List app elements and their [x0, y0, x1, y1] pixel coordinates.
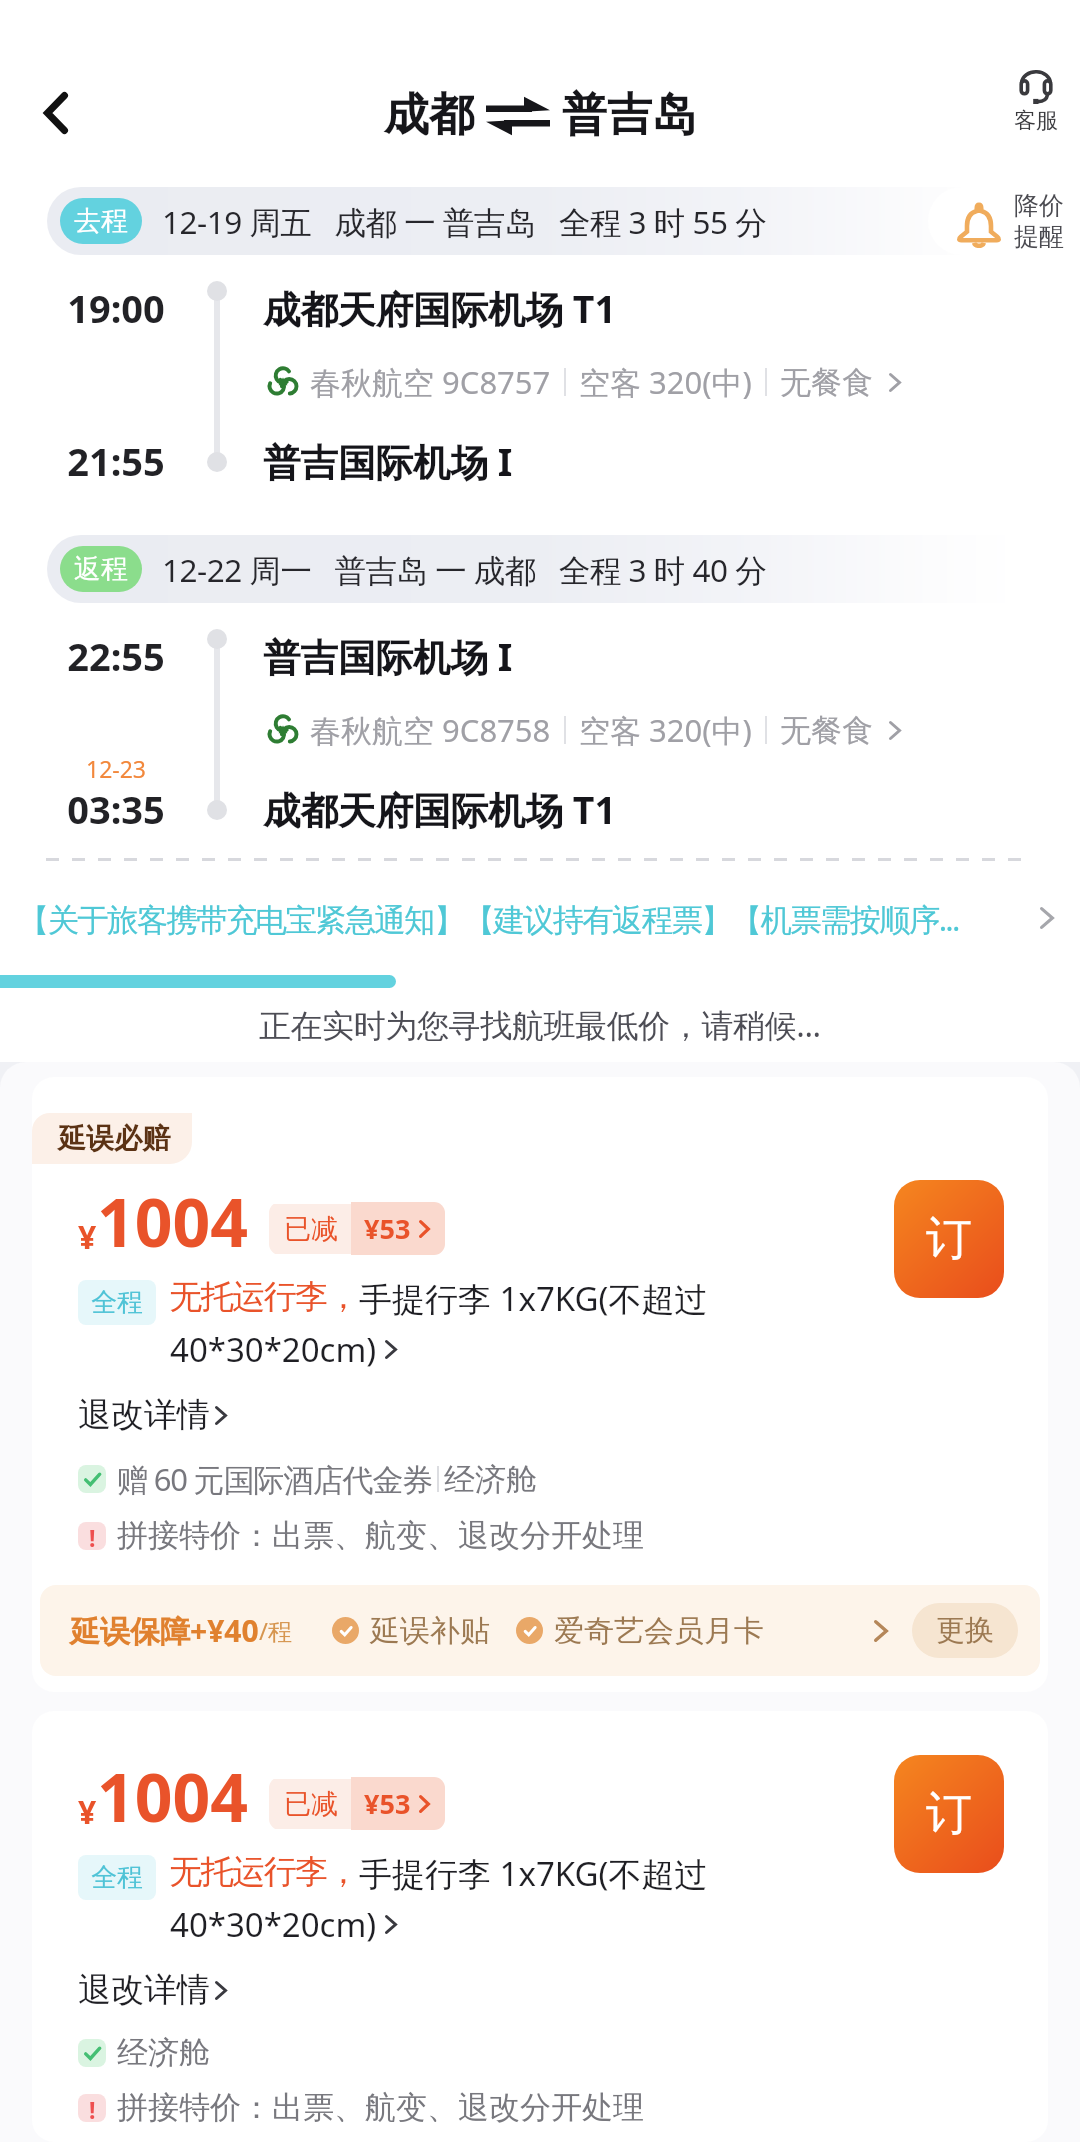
staticText: 普吉国际机场 I: [263, 436, 513, 487]
staticText: 空客 320(中): [579, 361, 752, 403]
staticText: 无餐食: [780, 711, 873, 750]
staticText: 经济舱: [444, 1460, 537, 1499]
staticText: 普吉岛: [562, 87, 697, 144]
staticText: 返程: [74, 552, 128, 586]
staticText: 1004: [97, 1176, 249, 1266]
button[interactable]: 退改详情: [78, 1969, 227, 2011]
button[interactable]: 已减: [269, 1777, 445, 1830]
staticText: 爱奇艺会员月卡: [554, 1612, 764, 1650]
button[interactable]: 客服 Customer service: [998, 64, 1074, 141]
button[interactable]: 延误必赔: [32, 1077, 1048, 1692]
staticText: 订: [926, 1785, 972, 1843]
staticText: 无餐食: [780, 363, 873, 402]
staticText: 全程: [91, 1286, 143, 1319]
staticText: 1004: [97, 1751, 249, 1841]
button[interactable]: 春秋航空 9C8758: [266, 709, 901, 751]
button[interactable]: 退改详情: [78, 1394, 227, 1436]
staticText: 【关于旅客携带充电宝紧急通知】【建议持有返程票】【机票需按顺序...: [18, 897, 1030, 940]
staticText: 12-19 周五 成都 一 普吉岛 全程 3 时 55 分: [162, 200, 767, 243]
staticText: 去程: [74, 204, 128, 238]
button[interactable]: 延误保障+¥40: [40, 1585, 1040, 1676]
staticText: 春秋航空 9C8757: [310, 361, 551, 403]
staticText: 延误必赔: [58, 1121, 170, 1156]
button[interactable]: 订: [894, 1180, 1004, 1298]
staticText: 退改详情: [78, 1394, 210, 1436]
button[interactable]: 【关于旅客携带充电宝紧急通知】【建议持有返程票】【机票需按顺序...: [0, 861, 1080, 975]
staticText: 降价: [1014, 190, 1064, 221]
staticText: 03:35: [51, 783, 181, 835]
staticText: 退改详情: [78, 1969, 210, 2011]
staticText: 无托运行李，: [170, 1851, 359, 1893]
staticText: 22:55: [51, 630, 181, 682]
staticText: 更换: [936, 1612, 994, 1649]
staticText: ¥: [78, 1215, 97, 1259]
staticText: 拼接特价：出票、航变、退改分开处理: [117, 1516, 644, 1555]
staticText: 正在实时为您寻找航班最低价，请稍候...: [259, 1003, 821, 1047]
staticText: ¥53: [364, 1210, 411, 1247]
staticText: 21:55: [51, 435, 181, 487]
staticText: 已减: [284, 1212, 338, 1246]
staticText: 经济舱: [117, 2033, 210, 2072]
button[interactable]: 已减: [269, 1202, 445, 1255]
staticText: 延误补贴: [370, 1612, 490, 1650]
button[interactable]: 更换: [912, 1603, 1018, 1658]
staticText: 已减: [284, 1787, 338, 1821]
button[interactable]: ¥: [32, 1711, 1048, 2142]
staticText: 无托运行李，: [170, 1276, 359, 1318]
staticText: 空客 320(中): [579, 709, 752, 751]
staticText: 成都天府国际机场 T1: [263, 784, 616, 835]
staticText: 普吉国际机场 I: [263, 631, 513, 682]
staticText: 赠 60 元国际酒店代金券: [117, 1458, 432, 1500]
staticText: 成都: [384, 87, 474, 144]
staticText: 手提行李 1x7KG(不超过: [359, 1276, 708, 1321]
button[interactable]: 降价: [928, 187, 1080, 255]
staticText: 40*30*20cm): [170, 1327, 377, 1372]
staticText: 12-22 周一 普吉岛 一 成都 全程 3 时 40 分: [162, 548, 767, 591]
staticText: 延误保障+¥40: [70, 1610, 259, 1651]
staticText: 19:00: [51, 282, 181, 334]
staticText: 全程: [91, 1861, 143, 1894]
staticText: !: [89, 1522, 96, 1550]
staticText: ¥: [78, 1790, 97, 1834]
staticText: 手提行李 1x7KG(不超过: [359, 1851, 708, 1896]
button[interactable]: 订: [894, 1755, 1004, 1873]
staticText: 成都天府国际机场 T1: [263, 283, 616, 334]
button[interactable]: Back: [21, 78, 91, 148]
staticText: !: [89, 2094, 96, 2122]
staticText: /程: [259, 1614, 292, 1647]
staticText: 12-23: [51, 753, 181, 784]
staticText: 提醒: [1014, 221, 1064, 252]
staticText: 客服: [1014, 107, 1058, 135]
staticText: 订: [926, 1210, 972, 1268]
button[interactable]: 春秋航空 9C8757: [266, 361, 901, 403]
staticText: ¥53: [364, 1785, 411, 1822]
staticText: 春秋航空 9C8758: [310, 709, 551, 751]
staticText: 40*30*20cm): [170, 1902, 377, 1947]
staticText: 拼接特价：出票、航变、退改分开处理: [117, 2088, 644, 2127]
